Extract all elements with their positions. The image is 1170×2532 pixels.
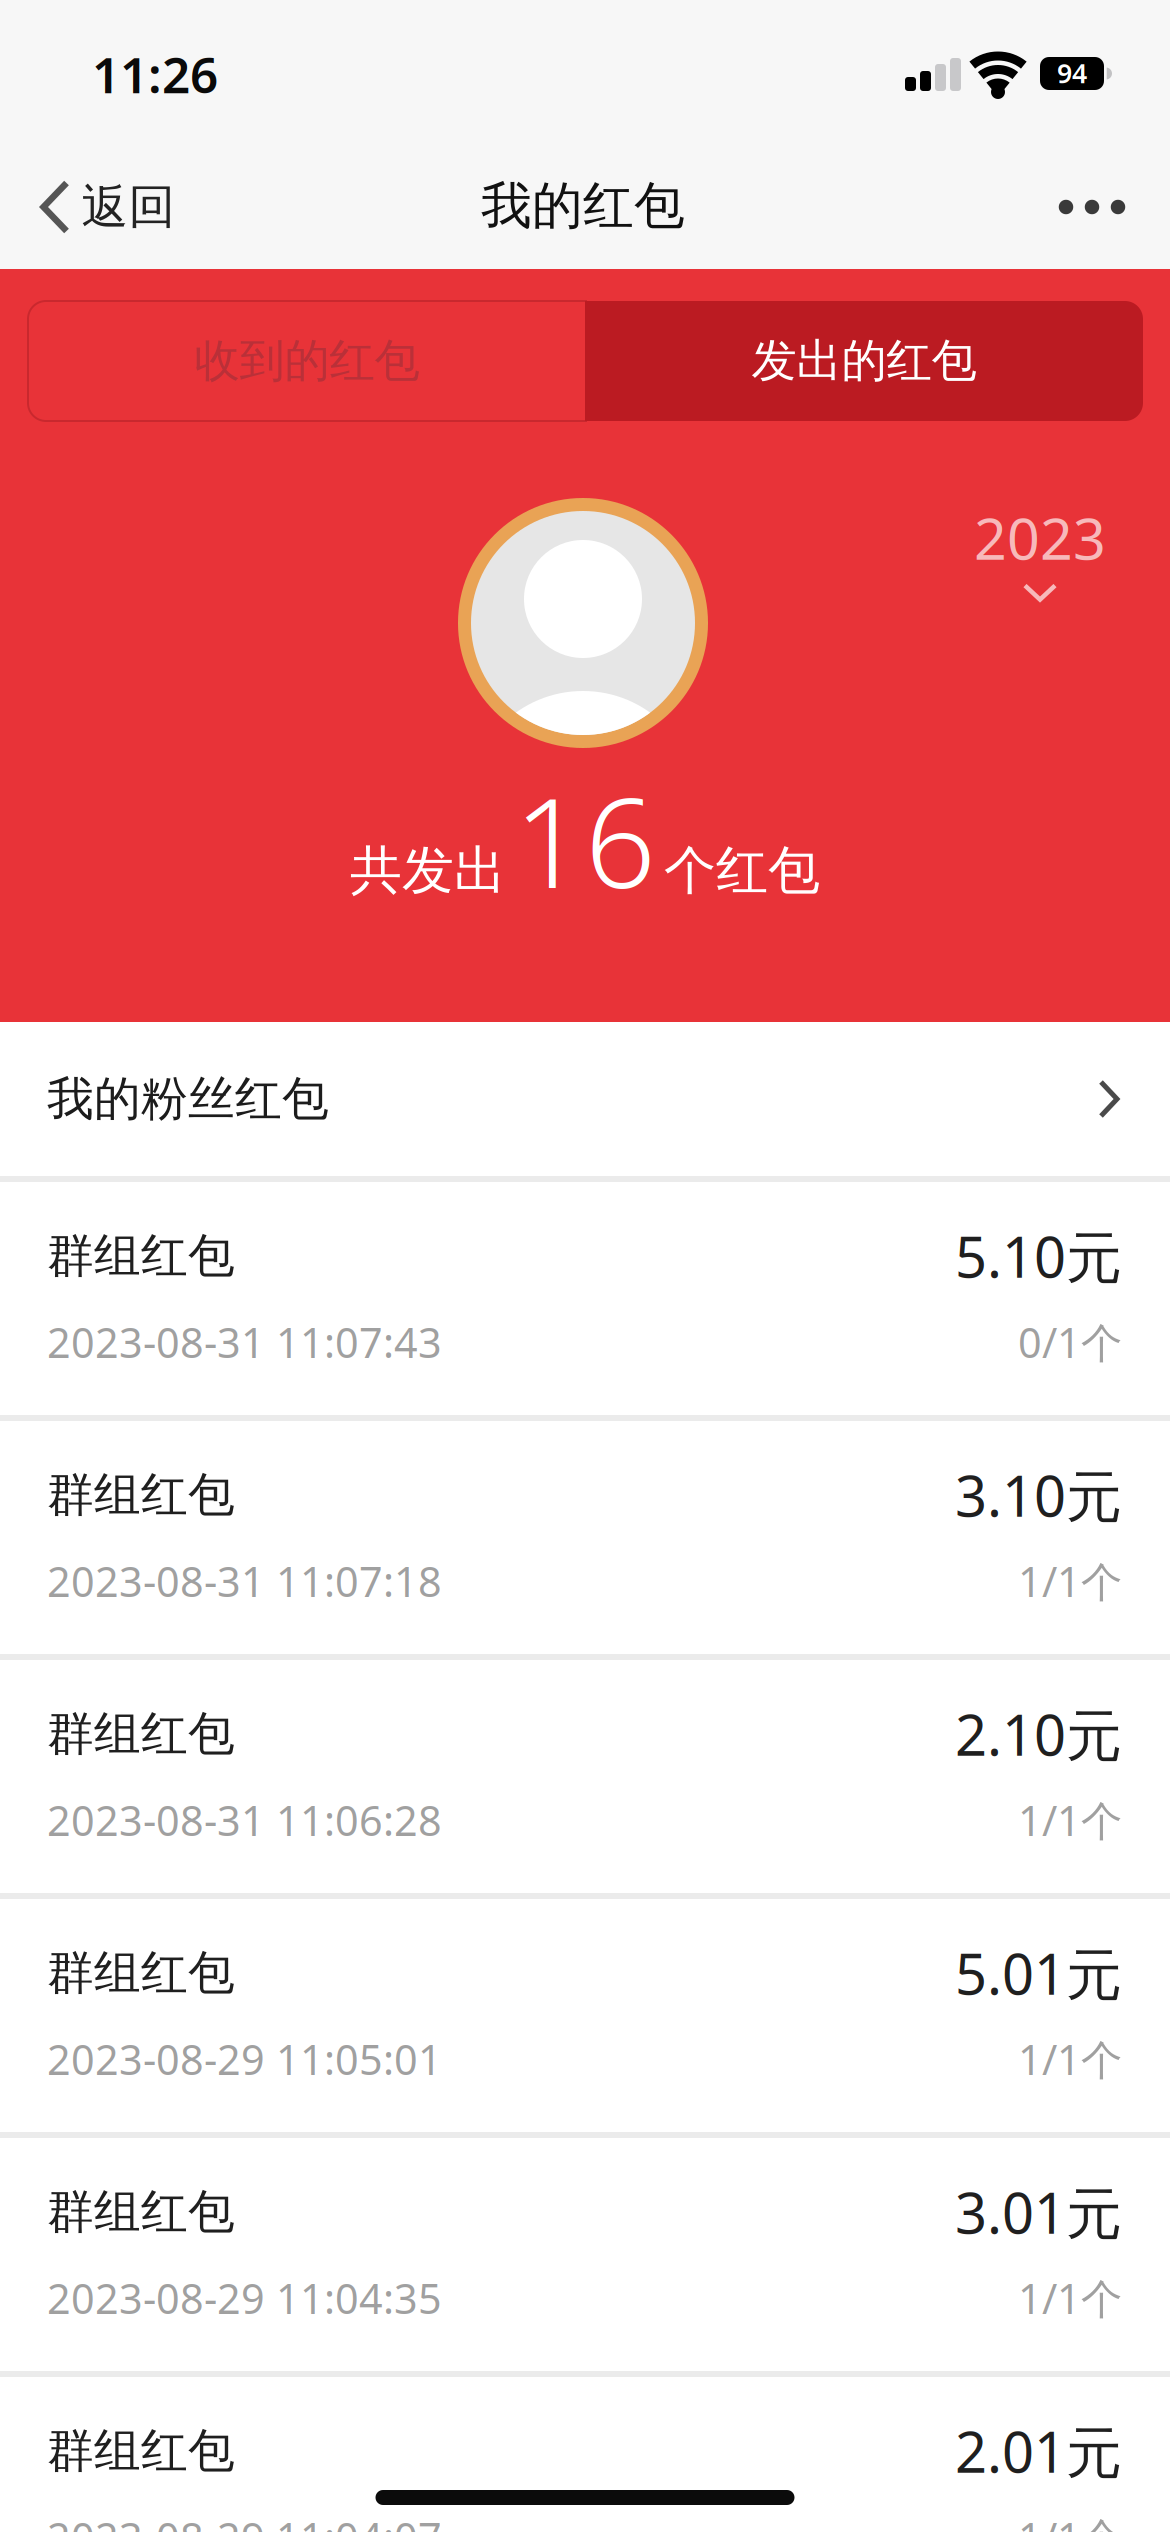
button[interactable]: 返回 [28, 167, 188, 247]
staticText: 2023-08-31 11:06:28 [47, 1793, 442, 1847]
button[interactable]: 群组红包 [0, 1421, 1170, 1654]
staticText: 群组红包 [47, 1944, 235, 2002]
button[interactable]: 群组红包 [0, 2377, 1170, 2532]
staticText: 群组红包 [47, 2422, 235, 2480]
staticText: 发出的红包 [751, 333, 976, 389]
staticText: 1/1个 [1018, 1554, 1122, 1608]
staticText: 收到的红包 [194, 333, 419, 389]
staticText: 我的红包 [481, 175, 685, 237]
staticText: 1/1个 [1018, 2510, 1122, 2532]
staticText: 5.01元 [955, 1936, 1122, 2010]
button[interactable]: Select year [920, 481, 1160, 621]
staticText: 2023-08-31 11:07:43 [47, 1315, 442, 1369]
staticText: 1/1个 [1018, 2271, 1122, 2325]
staticText: 5.10元 [955, 1219, 1122, 1293]
button[interactable]: 发出的红包 [585, 301, 1143, 421]
button[interactable]: 群组红包 [0, 1660, 1170, 1893]
staticText: 共发出 [350, 839, 506, 903]
staticText: 1/1个 [1018, 1793, 1122, 1847]
staticText: 2023-08-29 11:05:01 [47, 2032, 442, 2086]
staticText: 群组红包 [47, 1466, 235, 1524]
staticText: 我的粉丝红包 [47, 1070, 329, 1128]
staticText: 返回 [81, 178, 175, 236]
button[interactable]: 群组红包 [0, 1182, 1170, 1415]
button[interactable]: More [1037, 172, 1147, 242]
staticText: 16 [514, 758, 656, 922]
staticText: 2.01元 [955, 2414, 1122, 2488]
button[interactable]: 群组红包 [0, 2138, 1170, 2371]
button[interactable]: 收到的红包 [28, 301, 586, 421]
staticText: 个红包 [664, 839, 820, 903]
staticText: 2023-08-29 11:04:07 [47, 2510, 442, 2532]
staticText: 94 [1057, 55, 1087, 91]
staticText: 2.10元 [955, 1697, 1122, 1771]
button[interactable]: 群组红包 [0, 1899, 1170, 2132]
staticText: 群组红包 [47, 2183, 235, 2241]
staticText: 1/1个 [1018, 2032, 1122, 2086]
staticText: 11:26 [92, 41, 218, 107]
staticText: 3.10元 [955, 1458, 1122, 1532]
staticText: 2023-08-29 11:04:35 [47, 2271, 442, 2325]
staticText: 2023 [974, 499, 1106, 575]
staticText: 3.01元 [955, 2175, 1122, 2249]
staticText: 群组红包 [47, 1705, 235, 1763]
staticText: 2023-08-31 11:07:18 [47, 1554, 442, 1608]
button[interactable]: 我的粉丝红包 [0, 1022, 1170, 1176]
staticText: 0/1个 [1018, 1315, 1122, 1369]
staticText: 群组红包 [47, 1227, 235, 1285]
